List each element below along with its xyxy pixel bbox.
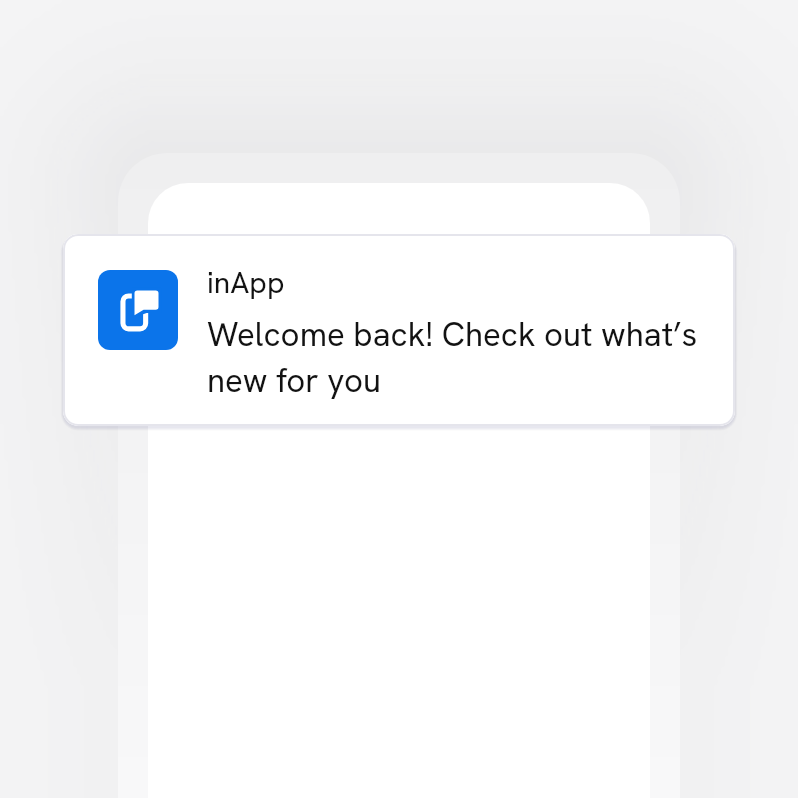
button[interactable]: inApp notification icon xyxy=(63,234,735,426)
other: inApp notification icon xyxy=(98,270,178,350)
staticText: Welcome back! Check out what’s new for y… xyxy=(207,313,698,402)
staticText: inApp xyxy=(207,263,285,302)
